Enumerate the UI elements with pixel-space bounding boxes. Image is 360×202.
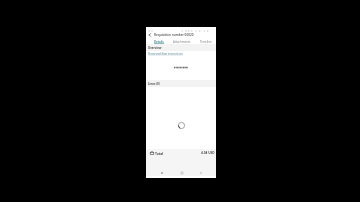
button[interactable]: Timeline — [193, 40, 218, 46]
staticText: Timeline — [200, 40, 212, 44]
button[interactable]: Details — [148, 40, 170, 46]
button[interactable]: Back — [146, 31, 216, 38]
staticText: 4.04 USD — [201, 151, 215, 155]
staticText: Attachments — [173, 40, 191, 44]
staticText: Overview — [148, 46, 162, 50]
button[interactable]: Recents — [197, 169, 204, 176]
button[interactable]: No data available — [174, 66, 188, 69]
button[interactable]: Total — [146, 150, 216, 156]
button[interactable]: Home — [178, 169, 185, 176]
button[interactable]: Show workflow instructions — [146, 51, 216, 56]
button[interactable]: Attachments — [170, 40, 193, 46]
staticText: Requisition number 00020 — [154, 33, 194, 37]
staticText: Lines (0) — [148, 82, 160, 86]
button[interactable]: Lines (0) — [146, 80, 216, 87]
staticText: Details — [154, 40, 164, 44]
button[interactable]: Back — [158, 169, 165, 176]
button[interactable]: Overview — [146, 44, 216, 51]
button[interactable]: Back — [147, 32, 153, 38]
staticText: Show workflow instructions — [148, 52, 183, 56]
staticText: Total — [155, 151, 164, 156]
